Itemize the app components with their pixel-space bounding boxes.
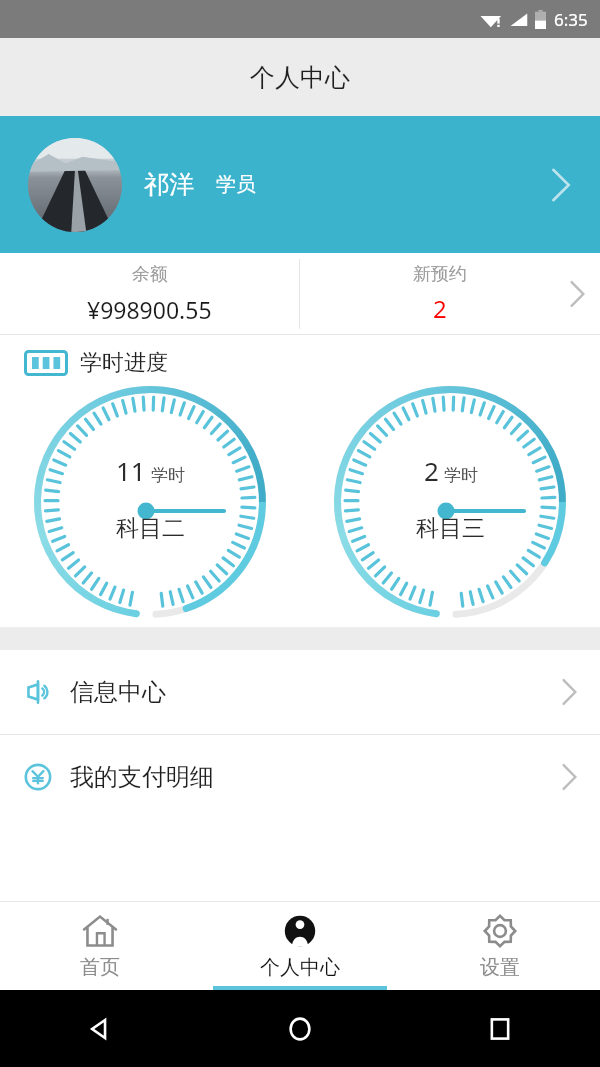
staticText: 6:35 [554,8,588,31]
other: Back [86,1015,114,1043]
staticText: 我的支付明细 [70,762,214,792]
staticText: 余额 [132,263,168,286]
staticText: 信息中心 [70,677,166,707]
staticText: 学员 [216,172,256,197]
other: Recents [488,1017,512,1041]
staticText: 科目三 [416,514,485,543]
staticText: 个人中心 [260,955,340,980]
other: Home [287,1016,313,1042]
button[interactable]: 首页 [0,902,200,990]
staticText: 新预约 [413,263,467,286]
staticText: 2 [424,453,439,488]
staticText: 11 [116,453,146,488]
button[interactable]: 设置 [400,902,600,990]
button[interactable]: 新预约 [300,253,600,335]
button[interactable]: 祁洋 [0,116,600,253]
other: 个人中心 [281,912,319,950]
other: 首页 [81,912,119,950]
button[interactable]: 我的支付明细 [0,735,600,819]
button[interactable]: 信息中心 [0,650,600,734]
staticText: 学时 [151,465,185,486]
button[interactable]: 个人中心 [200,902,400,990]
staticText: 学时 [444,465,478,486]
staticText: 首页 [80,955,120,980]
staticText: ¥998900.55 [87,294,212,325]
button[interactable]: 余额 [0,253,299,335]
other: 设置 [481,912,519,950]
staticText: 学时进度 [80,349,168,377]
staticText: 祁洋 [144,169,194,200]
staticText: 科目二 [116,514,185,543]
staticText: 个人中心 [250,62,350,93]
staticText: 2 [433,292,447,325]
staticText: 设置 [480,955,520,980]
